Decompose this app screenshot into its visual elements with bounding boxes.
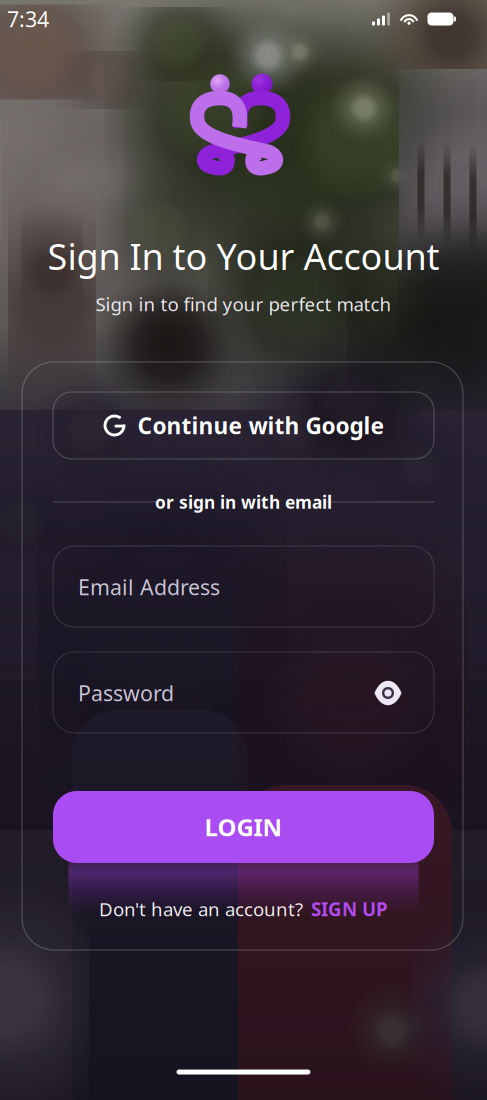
staticText: Continue with Google: [137, 410, 384, 440]
staticText: Email Address: [78, 573, 220, 601]
button[interactable]: SIGN UP: [311, 897, 388, 921]
staticText: SIGN UP: [311, 897, 388, 921]
staticText: Don't have an account?: [99, 897, 303, 921]
button[interactable]: LOGIN: [53, 791, 434, 863]
button[interactable]: Email Address: [53, 546, 434, 627]
staticText: LOGIN: [204, 811, 282, 843]
staticText: or sign in with email: [155, 490, 332, 513]
staticText: Sign in to find your perfect match: [95, 292, 391, 316]
staticText: Password: [78, 679, 174, 707]
staticText: Sign In to Your Account: [47, 232, 439, 280]
staticText: 7:34: [7, 5, 49, 33]
button[interactable]: Continue with Google: [53, 392, 434, 459]
button[interactable]: Password: [53, 652, 434, 733]
